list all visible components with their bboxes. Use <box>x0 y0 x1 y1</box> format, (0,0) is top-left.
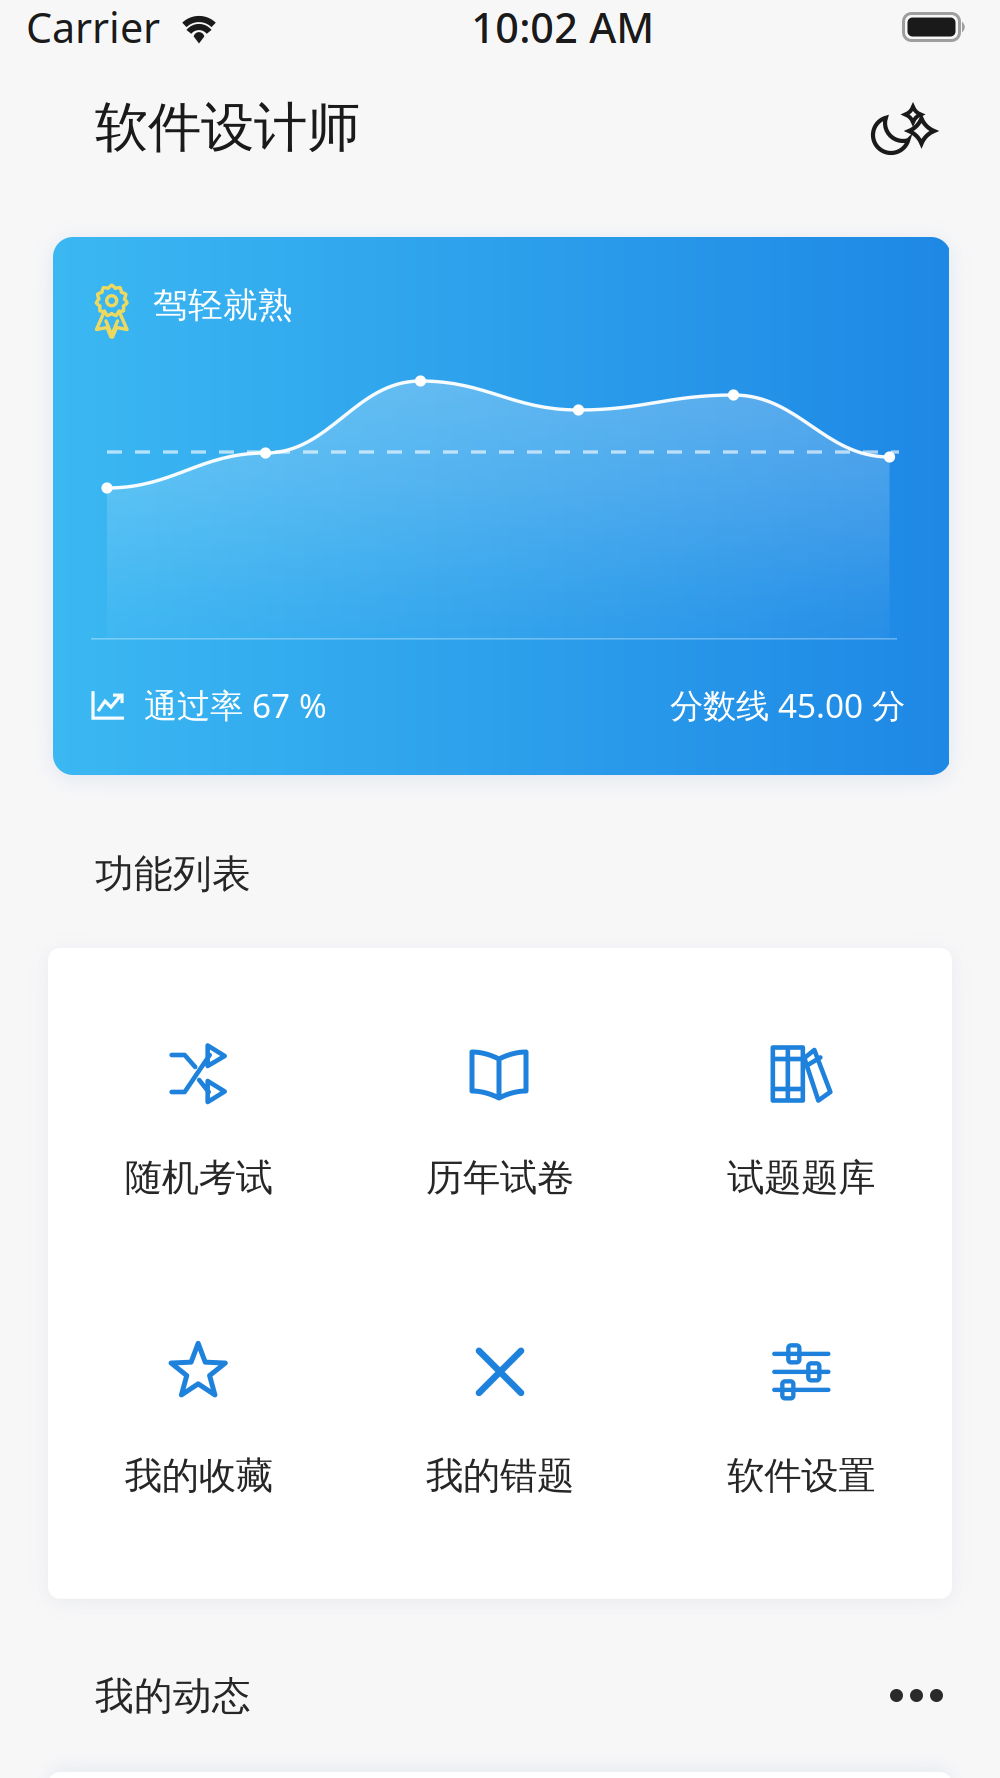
button[interactable]: 我的错题 <box>349 1341 651 1503</box>
staticText: 我的动态 <box>95 1672 251 1720</box>
staticText: 分数线 45.00 分 <box>670 683 905 727</box>
staticText: 软件设置 <box>727 1453 875 1499</box>
staticText: 驾轻就熟 <box>153 284 293 327</box>
staticText: 历年试卷 <box>426 1155 574 1201</box>
button[interactable]: Dark mode <box>872 106 930 162</box>
staticText: 通过率 67 % <box>144 683 327 727</box>
staticText: Carrier <box>26 0 160 54</box>
staticText: 功能列表 <box>95 850 251 898</box>
staticText: 我的收藏 <box>125 1453 273 1499</box>
staticText: 试题题库 <box>727 1155 875 1201</box>
staticText: 我的错题 <box>426 1453 574 1499</box>
button[interactable]: More <box>890 1689 943 1703</box>
button[interactable]: 历年试卷 <box>349 1043 651 1205</box>
button[interactable]: 软件设置 <box>651 1341 952 1503</box>
staticText: 10:02 AM <box>471 0 654 54</box>
button[interactable]: 随机考试 <box>48 1043 349 1205</box>
button[interactable]: 试题题库 <box>651 1043 952 1205</box>
button[interactable]: 我的收藏 <box>48 1341 349 1503</box>
staticText: 随机考试 <box>125 1155 273 1201</box>
staticText: 软件设计师 <box>95 95 360 160</box>
